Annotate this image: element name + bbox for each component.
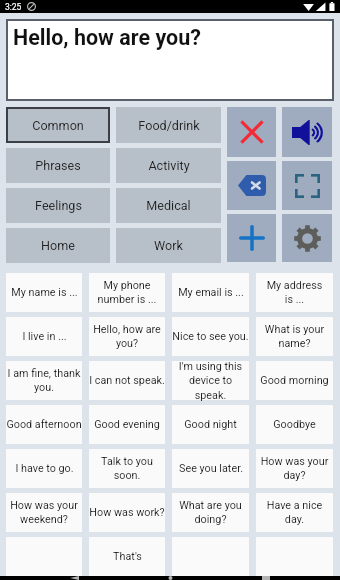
button[interactable]: Clear text [227,107,276,157]
staticText: My phone number is ... [89,279,165,306]
button[interactable]: My name is ... [6,273,82,312]
button[interactable]: Nice to see you. [172,317,249,356]
button[interactable]: Talk to you soon. [89,449,165,488]
staticText: How was your weekend? [6,499,82,526]
button[interactable]: Good afternoon [6,405,82,444]
button[interactable]: How was your weekend? [6,493,82,532]
button[interactable]: Good morning [256,361,333,400]
button[interactable]: Home [148,576,192,580]
button[interactable]: Phrases [6,148,110,183]
staticText: How was work? [89,506,165,519]
staticText: Nice to see you. [172,330,249,343]
button[interactable]: Settings [282,214,332,262]
staticText: Good night [184,418,237,431]
button[interactable]: Have a nice day. [256,493,333,532]
button[interactable]: Medical [116,188,221,223]
staticText: My address is ... [256,279,333,306]
staticText: That's [113,550,142,563]
staticText: Food/drink [138,118,200,133]
button[interactable]: Common [6,107,110,143]
button[interactable]: What is your name? [256,317,333,356]
button[interactable]: Work [116,228,221,263]
button[interactable]: Feelings [6,188,110,223]
staticText: Phrases [35,158,81,173]
button[interactable]: Backspace [227,161,276,210]
staticText: Common [32,118,84,133]
button[interactable]: My email is ... [172,273,249,312]
staticText: My email is ... [178,286,244,299]
staticText: Hello, how are you? [89,323,165,350]
button[interactable]: My phone number is ... [89,273,165,312]
staticText: I have to go. [15,462,74,475]
button[interactable]: What are you doing? [172,493,249,532]
staticText: Talk to you soon. [89,455,165,482]
staticText: Good morning [260,374,329,387]
staticText: What is your name? [256,323,333,350]
button[interactable]: I can not speak. [89,361,165,400]
button[interactable]: That's [89,537,165,576]
button[interactable]: I have to go. [6,449,82,488]
button[interactable]: Activity [116,148,221,183]
button[interactable]: My address is ... [256,273,333,312]
button[interactable]: I live in ... [6,317,82,356]
button[interactable]: See you later. [172,449,249,488]
staticText: I'm using this device to speak. [172,360,249,402]
button[interactable]: Speak [282,107,332,157]
staticText: Activity [148,158,190,173]
staticText: See you later. [179,462,243,475]
staticText: I live in ... [22,330,67,343]
staticText: I can not speak. [89,374,165,387]
button[interactable]: How was your day? [256,449,333,488]
staticText: Medical [146,198,191,213]
button[interactable]: Full screen [282,161,332,210]
staticText: Hello, how are you? [13,25,201,50]
staticText: Feelings [35,198,82,213]
button[interactable]: Good evening [89,405,165,444]
staticText: Have a nice day. [256,499,333,526]
button[interactable]: Hello, how are you? [6,19,334,101]
staticText: My name is ... [11,286,78,299]
staticText: Work [154,238,183,253]
button[interactable]: Good night [172,405,249,444]
button[interactable]: Back [52,576,96,580]
button[interactable]: How was work? [89,493,165,532]
staticText: Home [41,238,75,253]
staticText: I am fine, thank you. [6,367,82,394]
staticText: Goodbye [273,418,316,431]
staticText: Good evening [94,418,160,431]
button[interactable]: Recent apps [244,576,288,580]
button[interactable]: Home [6,228,110,263]
staticText: 3:25 [5,2,22,12]
button[interactable]: Food/drink [116,107,221,143]
button[interactable]: Add phrase [227,214,276,262]
staticText: What are you doing? [172,499,249,526]
button[interactable]: I'm using this device to speak. [172,361,249,400]
staticText: How was your day? [256,455,333,482]
button[interactable]: Hello, how are you? [89,317,165,356]
button[interactable]: Goodbye [256,405,333,444]
staticText: Good afternoon [6,418,82,431]
button[interactable]: I am fine, thank you. [6,361,82,400]
